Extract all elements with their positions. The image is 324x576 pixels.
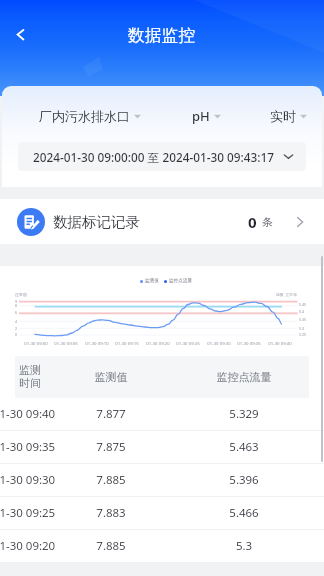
staticText: 01-30 09:15 <box>112 340 142 346</box>
staticText: 01-30 09:20 <box>143 340 173 346</box>
staticText: 8 <box>9 303 17 308</box>
button[interactable]: 2024-01-30 09:00:00 至 2024-01-30 09:43:1… <box>18 142 306 171</box>
staticText: 5.3 <box>199 538 289 554</box>
staticText: 7.875 <box>66 439 156 455</box>
staticText: 01-30 09:25 <box>0 505 69 521</box>
button[interactable]: pH <box>151 106 261 126</box>
staticText: 0 <box>248 212 257 232</box>
staticText: 5.329 <box>199 406 289 422</box>
staticText: 监测值 <box>145 278 159 284</box>
staticText: 2024-01-30 09:00:00 至 2024-01-30 09:43:1… <box>33 149 283 165</box>
staticText: 数据监控 <box>128 25 196 46</box>
staticText: 5.466 <box>199 505 289 521</box>
staticText: 01-30 09:30 <box>204 340 234 346</box>
button[interactable]: 实时 <box>233 106 322 126</box>
other: More <box>294 216 306 228</box>
staticText: 监控点流量 <box>169 278 192 284</box>
staticText: 01-30 09:10 <box>82 340 112 346</box>
staticText: 厂内污水排水口 <box>39 108 130 124</box>
staticText: 0 <box>9 332 17 337</box>
staticText: 实时 <box>270 108 296 124</box>
staticText: 9 <box>9 299 17 304</box>
staticText: 监控点流量 <box>204 370 284 384</box>
staticText: 正常值 <box>15 292 27 297</box>
staticText: 01-30 09:20 <box>0 538 69 554</box>
button[interactable]: Back <box>8 25 28 45</box>
staticText: 5.4 <box>299 309 313 314</box>
staticText: 01-30 09:40 <box>0 406 69 422</box>
staticText: 4 <box>9 319 17 324</box>
staticText: 5.45 <box>299 302 313 307</box>
staticText: 7.885 <box>66 472 156 488</box>
staticText: 7.883 <box>66 505 156 521</box>
staticText: 7.877 <box>66 406 156 422</box>
staticText: 6 <box>9 310 17 315</box>
staticText: 5.463 <box>199 439 289 455</box>
staticText: 流量 立方米 <box>276 292 297 297</box>
staticText: 01-30 09:25 <box>173 340 203 346</box>
staticText: 5.396 <box>199 472 289 488</box>
staticText: 01-30 09:35 <box>234 340 264 346</box>
staticText: 条 <box>262 215 273 229</box>
staticText: 监测 时间 <box>0 363 70 391</box>
staticText: 5.25 <box>299 332 313 337</box>
staticText: 2 <box>9 326 17 331</box>
button[interactable]: 厂内污水排水口 <box>35 106 145 126</box>
staticText: 01-30 09:00 <box>21 340 51 346</box>
staticText: 5.3 <box>299 326 313 331</box>
staticText: 01-30 09:35 <box>0 439 69 455</box>
staticText: pH <box>192 107 210 125</box>
staticText: 7.885 <box>66 538 156 554</box>
staticText: 数据标记记录 <box>53 213 140 231</box>
staticText: 监测值 <box>71 370 151 384</box>
button[interactable]: 数据标记记录 <box>0 199 324 244</box>
staticText: 01-30 09:40 <box>265 340 295 346</box>
staticText: 01-30 09:30 <box>0 472 69 488</box>
staticText: 01-30 09:05 <box>51 340 81 346</box>
staticText: 5.35 <box>299 317 313 322</box>
